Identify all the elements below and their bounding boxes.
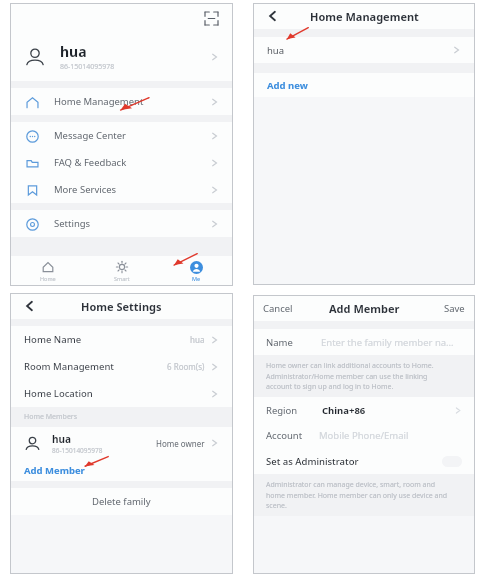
staticText: hua (52, 432, 71, 446)
staticText: China+86 (322, 404, 366, 417)
button[interactable]: Smart (85, 256, 159, 286)
staticText: Smart (114, 275, 130, 282)
staticText: hua (190, 334, 205, 345)
staticText: Administrator can manage device, smart, … (266, 480, 448, 510)
button[interactable]: Account (253, 423, 475, 448)
staticText: 86-15014095978 (60, 62, 115, 72)
button[interactable]: FAQ & Feedback (10, 149, 233, 176)
staticText: Home Settings (81, 299, 162, 314)
staticText: Home Management (54, 95, 144, 108)
button[interactable]: Room Management (10, 353, 233, 380)
button[interactable]: hua (10, 427, 233, 459)
staticText: Add Member (329, 301, 400, 316)
staticText: Settings (54, 217, 91, 230)
button[interactable]: Scan QR code (201, 8, 221, 28)
button[interactable]: Delete family (10, 488, 233, 515)
button[interactable]: Save (444, 302, 465, 315)
staticText: Set as Administrator (266, 455, 359, 468)
button[interactable]: Home (10, 256, 85, 286)
staticText: Enter the family member na… (321, 336, 454, 349)
staticText: hua (60, 42, 87, 61)
staticText: Message Center (54, 129, 127, 142)
staticText: Cancel (263, 302, 293, 315)
staticText: Home Location (24, 387, 93, 400)
button[interactable]: Back (19, 296, 39, 316)
staticText: Add Member (24, 464, 85, 477)
staticText: Name (266, 336, 293, 349)
staticText: FAQ & Feedback (54, 156, 127, 169)
staticText: Delete family (92, 495, 151, 508)
staticText: Add new (267, 79, 308, 92)
staticText: hua (267, 44, 285, 57)
button[interactable]: Me (159, 256, 233, 286)
button[interactable]: Add new (253, 73, 475, 97)
button[interactable]: Home Location (10, 380, 233, 407)
button[interactable]: Home Name (10, 326, 233, 353)
button[interactable]: Home Management (10, 88, 233, 115)
staticText: 86-15014095978 (52, 446, 103, 455)
staticText: Home Name (24, 333, 82, 346)
staticText: Mobile Phone/Email (319, 429, 409, 442)
button[interactable]: Set as Administrator (253, 448, 475, 474)
button[interactable]: Name (253, 329, 475, 355)
button[interactable]: More Services (10, 176, 233, 203)
staticText: Room Management (24, 360, 115, 373)
staticText: Save (444, 302, 465, 315)
button[interactable]: Settings (10, 210, 233, 237)
button[interactable]: Cancel (263, 302, 293, 315)
button[interactable]: Add Member (10, 459, 233, 481)
staticText: 6 Room(s) (167, 361, 205, 372)
staticText: Region (266, 404, 298, 417)
staticText: Me (192, 275, 201, 282)
button[interactable]: hua (253, 37, 475, 63)
button[interactable]: Region (253, 397, 475, 423)
staticText: Account (266, 429, 303, 442)
staticText: Home owner (156, 438, 205, 449)
button[interactable]: hua (10, 33, 233, 81)
staticText: Home owner can link additional accounts … (266, 361, 434, 391)
staticText: Home Management (310, 9, 419, 24)
staticText: Home Members (24, 412, 78, 422)
staticText: More Services (54, 183, 117, 196)
button[interactable]: Back (262, 6, 282, 26)
staticText: Home (40, 275, 56, 282)
button[interactable]: Message Center (10, 122, 233, 149)
